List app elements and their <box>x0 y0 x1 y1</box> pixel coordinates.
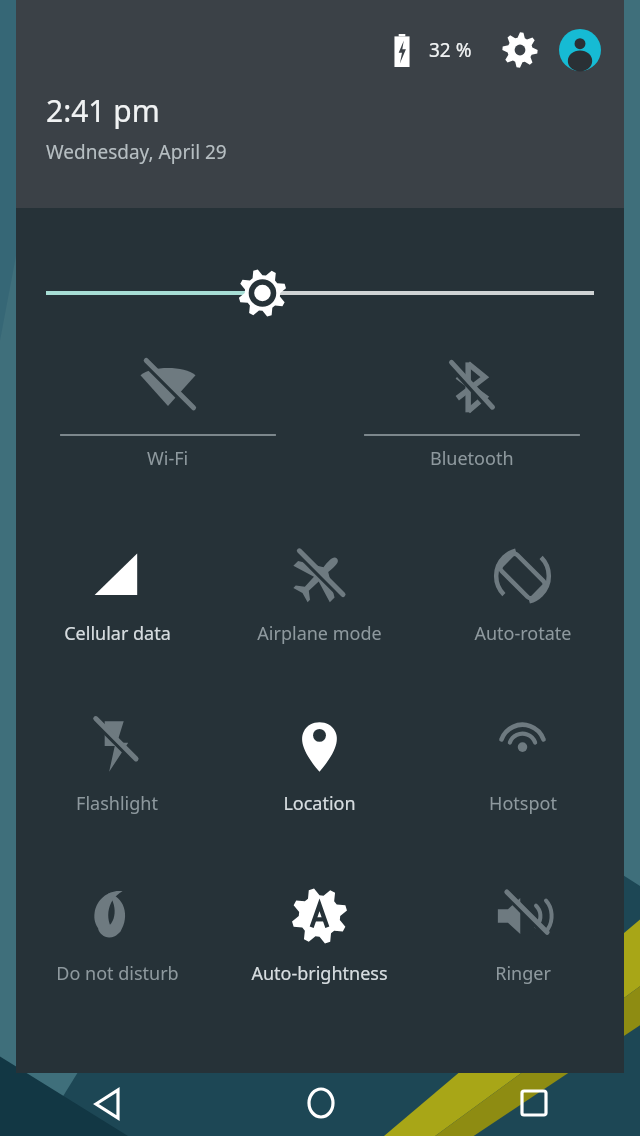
staticText: Bluetooth <box>430 446 514 471</box>
button[interactable]: Home <box>214 1073 427 1136</box>
staticText: 32 % <box>429 37 472 63</box>
button[interactable]: User account <box>558 28 602 72</box>
staticText: Location <box>283 791 356 816</box>
staticText: Airplane mode <box>257 621 382 646</box>
button[interactable]: Auto-brightness <box>218 858 421 1028</box>
staticText: Do not disturb <box>56 961 179 986</box>
button[interactable]: Settings <box>498 28 542 72</box>
button[interactable]: Recents <box>427 1073 640 1136</box>
button[interactable]: Do not disturb <box>16 858 218 1028</box>
button[interactable]: Airplane mode <box>218 518 421 688</box>
button[interactable]: Auto-rotate <box>421 518 624 688</box>
button[interactable]: Location <box>218 688 421 858</box>
button[interactable]: Flashlight <box>16 688 218 858</box>
button[interactable]: Back <box>0 1073 214 1136</box>
button[interactable]: Hotspot <box>421 688 624 858</box>
staticText: Auto-brightness <box>251 961 388 986</box>
staticText: Ringer <box>495 961 551 986</box>
staticText: 2:41 pm <box>46 90 160 131</box>
button[interactable]: Ringer <box>421 858 624 1028</box>
staticText: Wi-Fi <box>147 446 189 471</box>
button[interactable]: Cellular data <box>16 518 218 688</box>
staticText: Wednesday, April 29 <box>46 139 227 165</box>
button[interactable]: Wi-Fi <box>16 338 320 488</box>
staticText: Flashlight <box>76 791 158 816</box>
button[interactable]: Brightness <box>30 260 610 326</box>
staticText: Hotspot <box>489 791 557 816</box>
staticText: Auto-rotate <box>474 621 572 646</box>
button[interactable]: Bluetooth <box>320 338 624 488</box>
staticText: Cellular data <box>64 621 171 646</box>
